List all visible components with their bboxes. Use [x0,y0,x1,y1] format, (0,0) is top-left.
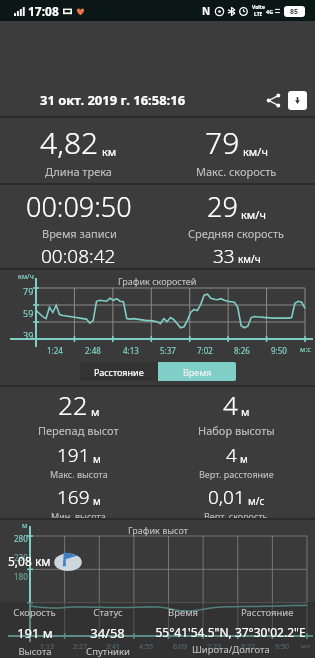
staticText: 34/58 [90,624,125,642]
staticText: Макс. скорость [196,164,277,179]
staticText: 00:09:50 [26,188,132,225]
staticText: 39 [23,329,34,341]
staticText: 3:41 [106,642,120,652]
staticText: Верт. скорость [204,510,268,518]
staticText: Статус [93,606,123,619]
staticText: Время [183,366,212,378]
staticText: км [102,144,117,159]
staticText: 17:08 [28,3,59,19]
staticText: 9:50 [275,642,289,652]
staticText: 6:09 [173,642,187,652]
staticText: 55°41'54.5"N, 37°30'02.2"E [155,624,306,640]
staticText: Volte [252,4,265,11]
button[interactable]: Download [288,91,307,110]
staticText: Время [168,606,198,619]
staticText: 169 [57,484,90,510]
staticText: 33 [213,243,235,268]
staticText: 1:13 [40,642,54,652]
staticText: 8:26 [234,345,250,356]
staticText: Широта/Долгота [192,643,270,656]
staticText: 191 [57,442,90,468]
staticText: м [91,404,100,419]
staticText: Время записи [42,226,117,241]
staticText: м [93,494,101,508]
staticText: м [22,521,28,531]
staticText: 7:23 [207,642,221,652]
staticText: 79 [205,122,240,163]
staticText: Высота [18,645,52,658]
staticText: 2:48 [85,345,101,356]
staticText: 4 [223,387,238,422]
button[interactable]: Скорость [0,606,69,658]
staticText: м [241,404,250,419]
staticText: 4 [226,442,237,468]
staticText: Макс. высота [50,468,108,480]
staticText: 191 м [17,624,53,642]
staticText: 4:55 [139,642,153,652]
staticText: 2:27 [73,642,87,652]
staticText: 280 [14,533,28,544]
staticText: м [93,452,101,466]
staticText: Скорость [13,606,56,619]
staticText: км/ч [238,252,261,266]
staticText: Спутники [86,645,130,658]
button[interactable]: Время [146,606,315,656]
staticText: 4,82 [40,122,99,163]
button[interactable]: Время [158,362,236,381]
staticText: 29 [207,188,238,225]
staticText: 7:02 [197,345,213,356]
staticText: м/с [248,494,265,508]
staticText: км/ч [18,272,34,282]
staticText: LTE [254,11,263,18]
staticText: 00:08:42 [41,243,116,268]
staticText: м [240,452,248,466]
staticText: 9:50 [271,345,287,356]
staticText: Верт. расстояние [199,468,274,480]
staticText: км/ч [243,144,268,159]
staticText: 5:37 [160,345,176,356]
staticText: м:с [301,642,311,650]
staticText: 4:13 [123,345,139,356]
staticText: N [202,4,211,18]
staticText: Средняя скорость [188,226,284,241]
staticText: Длина трека [45,164,112,179]
staticText: 79 [23,285,34,297]
staticText: График скоростей [118,275,197,287]
staticText: Набор высоты [198,423,275,438]
staticText: 4G [266,8,274,15]
button[interactable]: Share [260,87,286,113]
staticText: График высот [128,524,188,536]
staticText: 31 окт. 2019 г. 16:58:16 [40,91,186,109]
staticText: 230 [14,552,28,563]
staticText: 5,08 км [8,553,51,569]
staticText: 8:37 [241,642,255,652]
staticText: Мин. высота [51,510,106,518]
staticText: 1:24 [47,345,63,356]
staticText: Расстояние [241,606,294,619]
staticText: 0,01 [208,484,245,510]
button[interactable]: Расстояние [80,362,158,381]
staticText: 59 [23,307,34,319]
staticText: км/ч [241,207,266,222]
staticText: 22 [58,387,88,422]
button[interactable]: Статус [69,606,146,658]
staticText: 180 [14,571,28,582]
staticText: 85 [290,7,299,17]
staticText: Расстояние [94,366,144,378]
staticText: Перепад высот [38,423,119,438]
staticText: м:с [300,345,311,355]
